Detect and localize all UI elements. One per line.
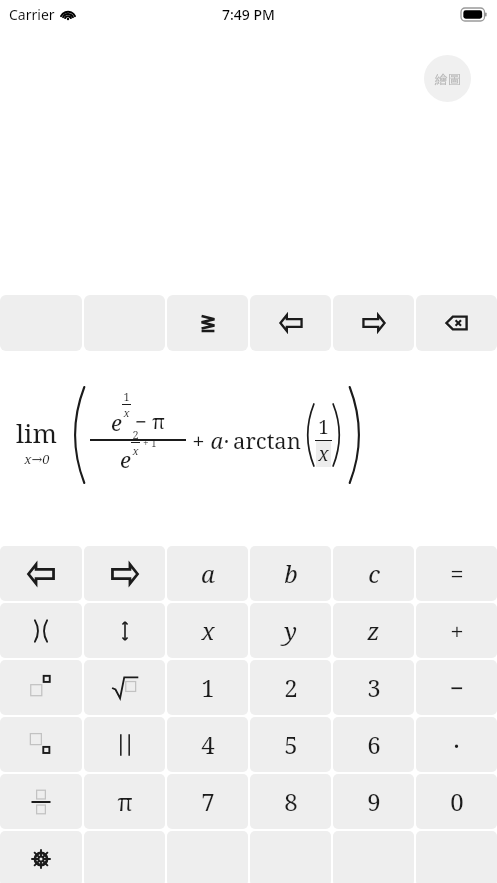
button[interactable]: a	[167, 546, 248, 601]
staticText: arctan	[233, 425, 301, 455]
staticText: x	[318, 441, 329, 467]
button[interactable]: 4	[167, 717, 248, 772]
button[interactable]: Move left	[250, 295, 331, 351]
button[interactable]: =	[416, 546, 497, 601]
button[interactable]: Backspace	[416, 295, 497, 351]
staticText: − π	[135, 408, 165, 435]
button[interactable]: Move right	[84, 546, 165, 601]
staticText: π	[117, 785, 133, 818]
button[interactable]: 2	[250, 660, 331, 715]
button[interactable]: y	[250, 603, 331, 658]
button[interactable]: Subscript	[0, 717, 82, 772]
staticText: 1	[123, 389, 130, 404]
button[interactable]: Power	[0, 660, 82, 715]
button[interactable]: x	[167, 603, 248, 658]
staticText: e	[111, 407, 122, 437]
staticText: 6	[367, 728, 381, 761]
staticText: ·	[453, 727, 460, 762]
staticText: a	[201, 557, 215, 590]
button[interactable]: ·	[416, 717, 497, 772]
staticText: 9	[367, 785, 381, 818]
staticText: z	[367, 614, 380, 647]
staticText: e	[120, 444, 131, 474]
staticText: 2	[132, 427, 139, 442]
button[interactable]: Parentheses	[0, 603, 82, 658]
staticText: + 1	[140, 436, 157, 450]
staticText: a·	[210, 425, 230, 455]
staticText: x	[123, 405, 130, 420]
button[interactable]: Move right	[333, 295, 414, 351]
staticText: x	[132, 443, 139, 458]
button[interactable]: 1	[167, 660, 248, 715]
button[interactable]: +	[416, 603, 497, 658]
button[interactable]: 0	[416, 774, 497, 829]
staticText: 1	[318, 414, 329, 440]
staticText: 1	[201, 671, 215, 704]
staticText: 0	[450, 785, 464, 818]
staticText: −	[450, 671, 464, 704]
button[interactable]: c	[333, 546, 414, 601]
button[interactable]: Greater equal less	[167, 295, 248, 351]
button[interactable]: Square root	[84, 660, 165, 715]
button[interactable]: 3	[333, 660, 414, 715]
staticText: 7	[201, 785, 215, 818]
staticText: 2	[284, 671, 298, 704]
button[interactable]: b	[250, 546, 331, 601]
staticText: y	[284, 614, 297, 647]
button[interactable]: π	[84, 774, 165, 829]
staticText: 7:49 PM	[222, 5, 275, 24]
staticText: x→0	[24, 450, 50, 468]
button[interactable]: 5	[250, 717, 331, 772]
button[interactable]: Move left	[0, 546, 82, 601]
staticText: c	[368, 557, 380, 590]
button[interactable]: Switch field	[84, 603, 165, 658]
staticText: 3	[367, 671, 381, 704]
button[interactable]: Absolute value	[84, 717, 165, 772]
button[interactable]: 8	[250, 774, 331, 829]
button[interactable]: Fraction	[0, 774, 82, 829]
staticText: b	[284, 557, 298, 590]
staticText: +	[192, 425, 205, 455]
staticText: =	[450, 557, 464, 590]
button[interactable]: 6	[333, 717, 414, 772]
staticText: 繪圖	[435, 71, 461, 87]
staticText: lim	[16, 415, 57, 450]
button[interactable]: Settings	[0, 831, 82, 883]
button[interactable]: −	[416, 660, 497, 715]
staticText: 8	[284, 785, 298, 818]
staticText: x	[201, 614, 215, 647]
button[interactable]: 繪圖	[424, 55, 471, 102]
staticText: Carrier	[9, 5, 55, 24]
staticText: 5	[284, 728, 298, 761]
staticText: +	[450, 614, 464, 647]
staticText: 4	[201, 728, 215, 761]
button[interactable]: 7	[167, 774, 248, 829]
button[interactable]: 9	[333, 774, 414, 829]
button[interactable]: z	[333, 603, 414, 658]
